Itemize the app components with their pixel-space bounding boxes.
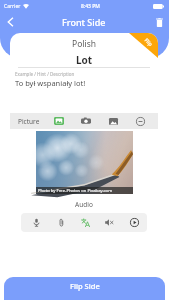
staticText: Photo by Free-Photos on Pixabay.com (38, 188, 113, 194)
button[interactable]: Photo (105, 113, 121, 129)
staticText: Carrier (4, 3, 21, 10)
staticText: To był wspaniały lot! (15, 78, 86, 88)
staticText: 8:43 PM (81, 3, 100, 10)
staticText: Polish (10, 38, 158, 50)
button[interactable]: Gallery (51, 113, 67, 129)
button[interactable]: Record audio (26, 213, 46, 232)
staticText: Flip (143, 37, 154, 48)
button[interactable]: Translate (75, 213, 95, 232)
button[interactable]: Delete (149, 12, 169, 32)
staticText: Front Side (62, 16, 106, 28)
staticText: Example / Hint / Description (15, 71, 75, 77)
button[interactable]: Camera (78, 113, 94, 129)
button[interactable]: Remove picture (132, 113, 148, 129)
button[interactable]: Flip (129, 33, 158, 58)
staticText: Lot (10, 53, 158, 67)
button[interactable]: Mute (99, 213, 119, 232)
button[interactable]: Back (0, 12, 20, 32)
button[interactable]: Flip Side (4, 277, 165, 300)
staticText: Picture (18, 117, 40, 126)
button[interactable]: Play (124, 213, 144, 232)
staticText: Flip Side (70, 281, 100, 291)
button[interactable]: Attach file (51, 213, 71, 232)
staticText: Audio (10, 200, 158, 209)
